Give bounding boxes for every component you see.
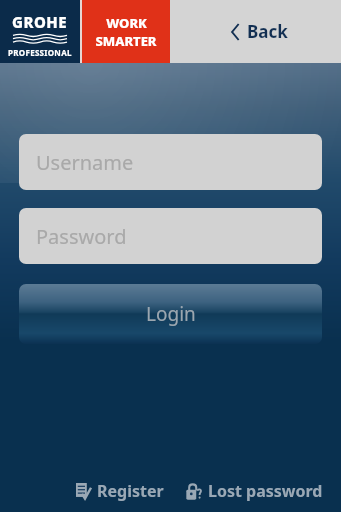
staticText: Register: [97, 480, 164, 502]
button[interactable]: Back: [170, 0, 341, 63]
button[interactable]: Register: [72, 476, 168, 506]
button[interactable]: Work Smarter: [82, 0, 170, 63]
staticText: WORK: [106, 14, 147, 32]
staticText: PROFESSIONAL: [8, 47, 72, 58]
staticText: GROHE: [12, 12, 68, 32]
button[interactable]: Username: [19, 134, 322, 190]
button[interactable]: Password: [19, 208, 322, 264]
staticText: Lost password: [208, 480, 323, 502]
staticText: Password: [36, 223, 127, 250]
button[interactable]: Login: [19, 284, 322, 344]
staticText: Username: [36, 149, 134, 176]
button[interactable]: GROHE Professional: [0, 0, 80, 63]
staticText: Back: [247, 20, 288, 43]
staticText: SMARTER: [95, 32, 157, 50]
button[interactable]: Lost password: [182, 476, 327, 506]
staticText: Login: [146, 301, 196, 327]
